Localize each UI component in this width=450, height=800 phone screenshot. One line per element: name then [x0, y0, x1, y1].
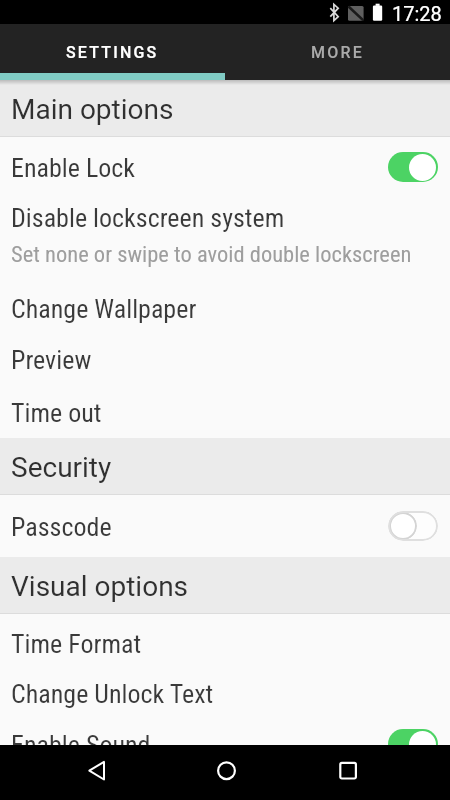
- staticText: Change Unlock Text: [11, 679, 214, 709]
- staticText: Visual options: [11, 570, 189, 603]
- button[interactable]: Passcode: [0, 500, 450, 552]
- button[interactable]: Enable Sound: [0, 718, 450, 770]
- button[interactable]: Time out: [0, 386, 450, 438]
- button[interactable]: [388, 729, 438, 759]
- staticText: Security: [11, 451, 112, 484]
- button[interactable]: Enable Lock: [0, 141, 450, 193]
- staticText: Enable Lock: [11, 153, 136, 183]
- button[interactable]: [300, 745, 450, 800]
- staticText: Disable lockscreen system: [11, 203, 285, 233]
- staticText: Preview: [11, 345, 92, 375]
- button[interactable]: [388, 152, 438, 182]
- button[interactable]: Disable lockscreen system: [0, 196, 450, 268]
- button[interactable]: [0, 745, 150, 800]
- button[interactable]: Time Format: [0, 617, 450, 669]
- button[interactable]: [150, 745, 300, 800]
- staticText: Time out: [11, 398, 102, 428]
- button[interactable]: [388, 511, 438, 541]
- button[interactable]: Change Unlock Text: [0, 667, 450, 719]
- staticText: Change Wallpaper: [11, 294, 197, 324]
- staticText: Time Format: [11, 629, 142, 659]
- staticText: Enable Sound: [11, 730, 151, 760]
- staticText: Main options: [11, 93, 174, 126]
- button[interactable]: Preview: [0, 333, 450, 385]
- staticText: Passcode: [11, 512, 112, 542]
- button[interactable]: SETTINGS: [0, 24, 225, 80]
- staticText: MORE: [311, 43, 364, 62]
- staticText: 17:28: [392, 2, 442, 24]
- staticText: Set none or swipe to avoid double locksc…: [11, 241, 412, 267]
- button[interactable]: MORE: [225, 24, 450, 80]
- button[interactable]: Change Wallpaper: [0, 282, 450, 334]
- staticText: SETTINGS: [66, 43, 159, 62]
